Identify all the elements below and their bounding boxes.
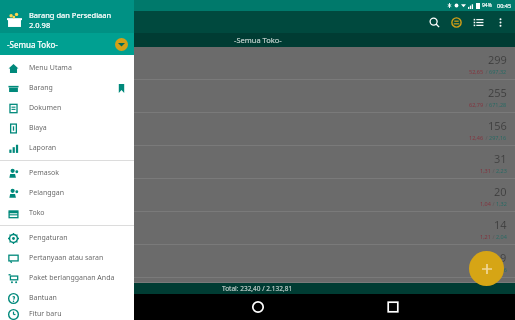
staticText: 297,16	[489, 134, 507, 141]
staticText: Total: 232,40 / 2.132,81	[222, 284, 293, 293]
staticText: 299	[488, 52, 507, 67]
staticText: 94%	[482, 2, 492, 9]
staticText: Pemasok	[29, 168, 59, 178]
button[interactable]: View list	[467, 11, 489, 33]
button[interactable]: Select store	[115, 38, 128, 51]
staticText: -Semua Toko-	[7, 39, 58, 50]
staticText: Pengaturan	[29, 233, 68, 243]
button[interactable]: Dokumen	[0, 98, 134, 118]
button[interactable]: Toko	[0, 203, 134, 223]
button[interactable]: Pertanyaan atau saran	[0, 248, 134, 268]
staticText: 9	[500, 250, 507, 265]
staticText: Toko	[29, 208, 45, 218]
staticText: Dokumen	[29, 103, 62, 113]
button[interactable]: Pemasok	[0, 163, 134, 183]
button[interactable]: Home	[245, 294, 271, 320]
button[interactable]: Barang	[0, 78, 134, 98]
staticText: 31	[494, 151, 507, 166]
staticText: 255	[488, 85, 507, 100]
staticText: 671,28	[489, 101, 507, 108]
button[interactable]: 20	[0, 179, 515, 212]
staticText: 12,46	[469, 134, 484, 141]
button[interactable]: Menu Utama	[0, 58, 134, 78]
staticText: 156	[488, 118, 507, 133]
button[interactable]: Sort A to Z	[445, 11, 467, 33]
staticText: Laporan	[29, 143, 57, 153]
staticText: Pelanggan	[29, 188, 65, 198]
button[interactable]: Fitur baru	[0, 308, 134, 320]
staticText: 1,31	[480, 167, 491, 174]
button[interactable]: More options	[489, 11, 511, 33]
button[interactable]: Biaya	[0, 118, 134, 138]
staticText: 2,23	[496, 167, 507, 174]
button[interactable]: Recent apps	[380, 294, 406, 320]
button[interactable]: Bantuan	[0, 288, 134, 308]
staticText: Paket berlangganan Anda	[29, 273, 115, 283]
staticText: 62,79	[469, 101, 484, 108]
staticText: 1,21	[480, 233, 491, 240]
button[interactable]: Add item	[469, 251, 504, 286]
staticText: Barang dan Persediaan 2.0.98	[29, 10, 134, 30]
button[interactable]: -Semua Toko-	[0, 33, 134, 55]
button[interactable]: Pelanggan	[0, 183, 134, 203]
button[interactable]: 299	[0, 47, 515, 80]
button[interactable]: Back	[109, 294, 135, 320]
button[interactable]: Search	[423, 11, 445, 33]
button[interactable]: Laporan	[0, 138, 134, 158]
staticText: Barang	[29, 83, 53, 93]
staticText: Pertanyaan atau saran	[29, 253, 104, 263]
button[interactable]: 9	[0, 245, 515, 278]
staticText: 697,32	[489, 68, 507, 75]
button[interactable]: 255	[0, 80, 515, 113]
staticText: 122	[488, 278, 507, 283]
button[interactable]: Pengaturan	[0, 228, 134, 248]
button[interactable]: 31	[0, 146, 515, 179]
staticText: Biaya	[29, 123, 47, 133]
staticText: -Semua Toko-	[234, 35, 282, 45]
button[interactable]: Paket berlangganan Anda	[0, 268, 134, 288]
staticText: 1,32	[496, 200, 507, 207]
staticText: 00:45	[497, 2, 512, 9]
staticText: Fitur baru	[29, 309, 62, 319]
staticText: 52,65	[469, 68, 484, 75]
staticText: Bantuan	[29, 293, 57, 303]
staticText: 1,16	[496, 266, 507, 273]
button[interactable]: 156	[0, 113, 515, 146]
button[interactable]: 14	[0, 212, 515, 245]
staticText: /	[491, 266, 496, 273]
staticText: Menu Utama	[29, 63, 72, 73]
staticText: 1,04	[480, 200, 491, 207]
staticText: 0,42	[480, 266, 491, 273]
staticText: 2,04	[496, 233, 507, 240]
staticText: 20	[494, 184, 507, 199]
button[interactable]: 122	[0, 278, 515, 283]
staticText: 14	[494, 217, 507, 232]
